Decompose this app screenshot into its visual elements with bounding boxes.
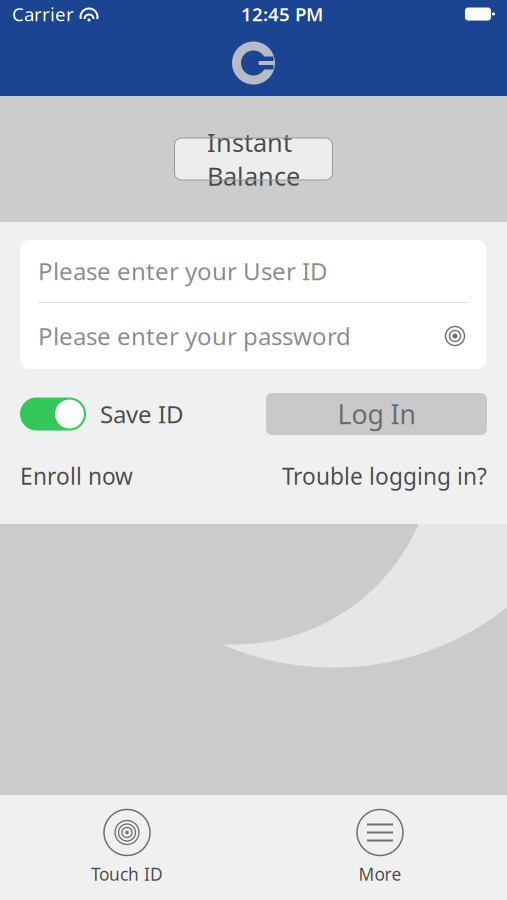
staticText: Instant Balance xyxy=(207,125,300,193)
button[interactable]: Trouble logging in? xyxy=(282,461,487,491)
staticText: Trouble logging in? xyxy=(282,461,487,491)
staticText: Carrier xyxy=(12,2,74,26)
button[interactable]: Touch ID xyxy=(0,800,253,895)
staticText: Touch ID xyxy=(91,862,163,885)
button[interactable]: Show password xyxy=(441,326,469,346)
staticText: Enroll now xyxy=(20,461,133,491)
staticText: Save ID xyxy=(100,398,184,430)
staticText: Please enter your User ID xyxy=(38,255,328,287)
staticText: Please enter your password xyxy=(38,320,351,352)
button[interactable]: Save ID xyxy=(20,397,184,430)
button[interactable]: Instant Balance xyxy=(174,138,332,180)
staticText: Log In xyxy=(337,396,415,432)
button[interactable]: Log In xyxy=(266,393,487,435)
staticText: More xyxy=(358,862,401,885)
button[interactable]: More xyxy=(253,800,506,895)
button[interactable]: Enroll now xyxy=(20,461,133,491)
staticText: 12:45 PM xyxy=(241,2,323,26)
